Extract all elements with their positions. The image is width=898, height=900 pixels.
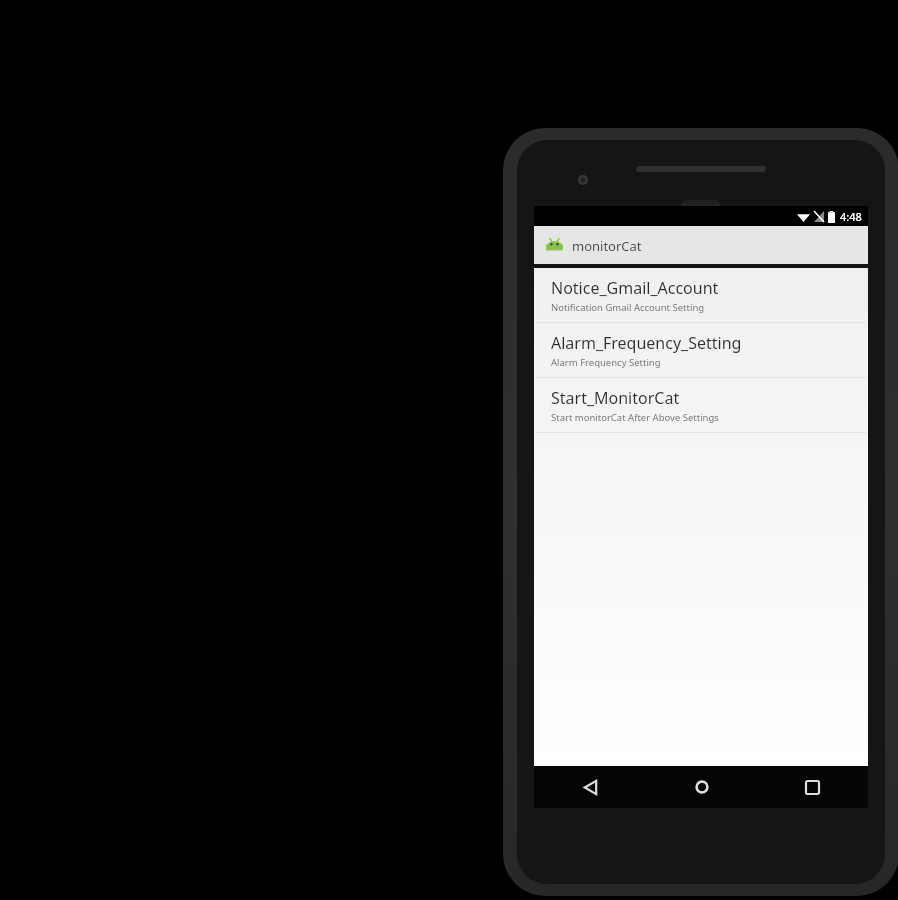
staticText: Alarm Frequency Setting — [551, 356, 661, 369]
button[interactable]: Home — [646, 766, 757, 808]
button[interactable]: monitorCat — [534, 226, 868, 264]
staticText: Alarm_Frequency_Setting — [551, 332, 742, 354]
button[interactable]: Back — [534, 766, 646, 808]
staticText: 4:48 — [840, 209, 862, 224]
button[interactable]: Start_MonitorCat — [534, 378, 868, 433]
staticText: monitorCat — [572, 237, 642, 255]
staticText: Start_MonitorCat — [551, 387, 680, 409]
button[interactable]: Notice_Gmail_Account — [534, 268, 868, 323]
staticText: Start monitorCat After Above Settings — [551, 411, 719, 424]
staticText: Notice_Gmail_Account — [551, 277, 719, 299]
button[interactable]: Alarm_Frequency_Setting — [534, 323, 868, 378]
staticText: Notification Gmail Account Setting — [551, 301, 705, 314]
button[interactable]: Recent apps — [757, 766, 868, 808]
